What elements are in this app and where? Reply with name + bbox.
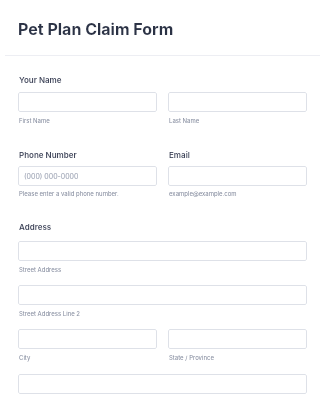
button[interactable] xyxy=(18,329,157,349)
staticText: Address xyxy=(19,222,52,232)
staticText: State / Province xyxy=(169,354,214,361)
staticText: example@example.com xyxy=(169,190,237,197)
staticText: (000) 000-0000 xyxy=(24,172,79,180)
staticText: Street Address xyxy=(19,266,62,273)
button[interactable] xyxy=(18,374,307,394)
button[interactable] xyxy=(168,329,307,349)
staticText: City xyxy=(19,354,31,361)
staticText: First Name xyxy=(19,117,50,124)
staticText: Last Name xyxy=(169,117,200,124)
staticText: Street Address Line 2 xyxy=(19,310,81,317)
staticText: Phone Number xyxy=(19,150,77,160)
staticText: Email xyxy=(169,150,190,160)
button[interactable] xyxy=(18,241,307,261)
button[interactable] xyxy=(18,285,307,305)
staticText: Please enter a valid phone number. xyxy=(19,190,119,197)
staticText: Pet Plan Claim Form xyxy=(18,19,174,38)
button[interactable] xyxy=(168,92,307,112)
button[interactable] xyxy=(18,92,157,112)
button[interactable] xyxy=(168,166,307,186)
staticText: Your Name xyxy=(19,75,62,85)
button[interactable]: (000) 000-0000 xyxy=(18,166,157,186)
